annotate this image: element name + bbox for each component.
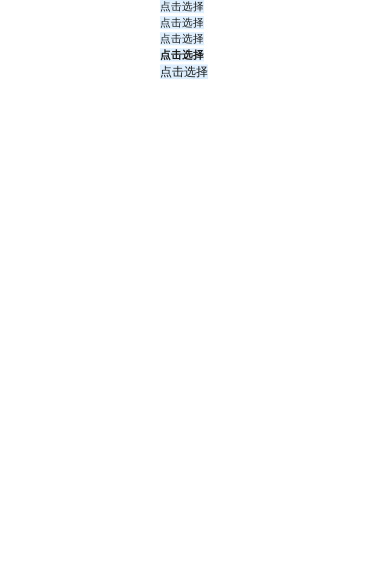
- staticText: 点击选择: [160, 48, 204, 61]
- staticText: 点击选择: [160, 0, 204, 13]
- staticText: 点击选择: [160, 16, 204, 29]
- staticText: 点击选择: [160, 32, 204, 45]
- staticText: 点击选择: [160, 64, 208, 79]
